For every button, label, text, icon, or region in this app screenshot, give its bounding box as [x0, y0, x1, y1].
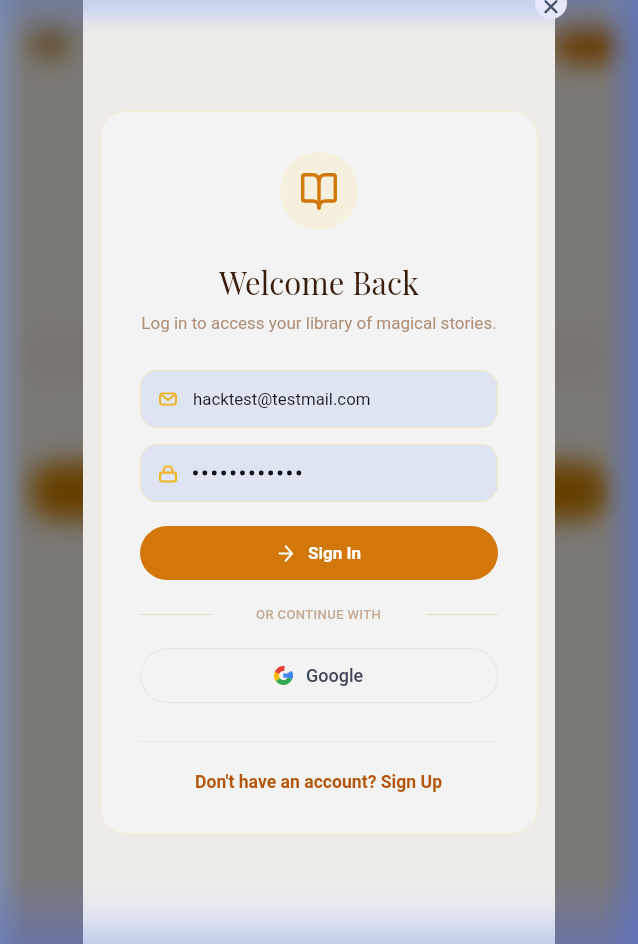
button[interactable] — [140, 444, 498, 502]
button[interactable]: Don't have an account? Sign Up — [195, 772, 443, 793]
staticText: hacktest@testmail.com — [193, 389, 371, 409]
button[interactable]: Close — [535, 0, 567, 19]
staticText: Welcome Back — [219, 261, 420, 302]
staticText: Sign In — [308, 543, 361, 563]
button[interactable]: Sign In — [140, 526, 498, 580]
button[interactable]: Google — [140, 648, 498, 703]
staticText: Log in to access your library of magical… — [141, 313, 497, 333]
staticText: Google — [306, 665, 364, 686]
staticText: OR CONTINUE WITH — [256, 607, 382, 622]
button[interactable]: hacktest@testmail.com — [140, 370, 498, 428]
staticText: Don't have an account? Sign Up — [195, 772, 443, 793]
